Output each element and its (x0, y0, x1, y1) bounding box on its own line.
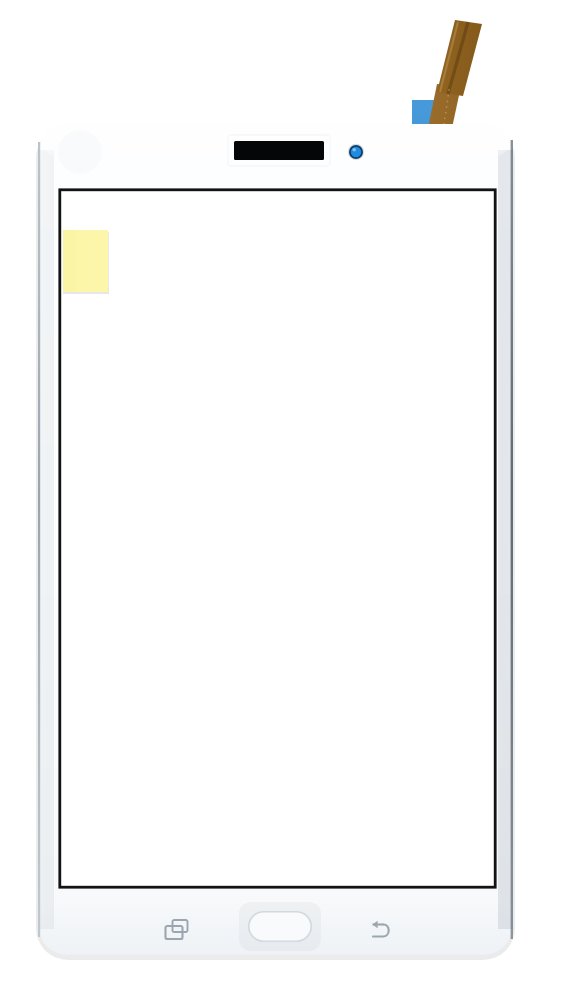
button[interactable]: Tablet digitizer touch panel (0, 0, 562, 1000)
